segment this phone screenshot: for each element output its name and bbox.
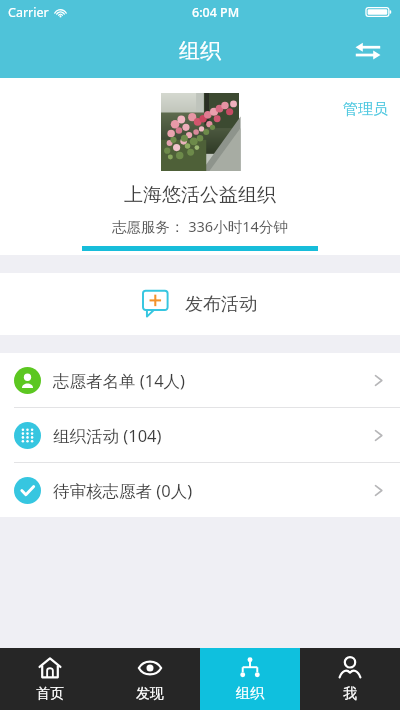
- button[interactable]: 首页: [0, 648, 100, 710]
- staticText: Carrier: [8, 4, 49, 21]
- staticText: 上海悠活公益组织: [124, 183, 276, 207]
- staticText: 待审核志愿者 (0人): [53, 479, 193, 502]
- staticText: 发现: [136, 685, 164, 703]
- button[interactable]: 发现: [100, 648, 200, 710]
- button[interactable]: Switch organization: [346, 29, 390, 73]
- staticText: 志愿服务： 336小时14分钟: [112, 216, 288, 236]
- staticText: 我: [343, 685, 357, 703]
- staticText: 志愿者名单 (14人): [53, 369, 186, 392]
- button[interactable]: 志愿者名单 (14人): [0, 353, 400, 407]
- button[interactable]: 发布活动: [0, 273, 400, 335]
- button[interactable]: 组织: [200, 648, 300, 710]
- staticText: 管理员: [343, 100, 388, 119]
- staticText: 组织活动 (104): [53, 424, 162, 447]
- staticText: 组织: [236, 685, 264, 703]
- button[interactable]: 待审核志愿者 (0人): [0, 463, 400, 517]
- staticText: 发布活动: [185, 293, 257, 316]
- staticText: 6:04 PM: [192, 4, 240, 21]
- staticText: 组织: [179, 38, 221, 64]
- button[interactable]: 组织活动 (104): [0, 408, 400, 462]
- staticText: 首页: [36, 685, 64, 703]
- button[interactable]: 管理员: [339, 96, 392, 123]
- button[interactable]: 我: [300, 648, 400, 710]
